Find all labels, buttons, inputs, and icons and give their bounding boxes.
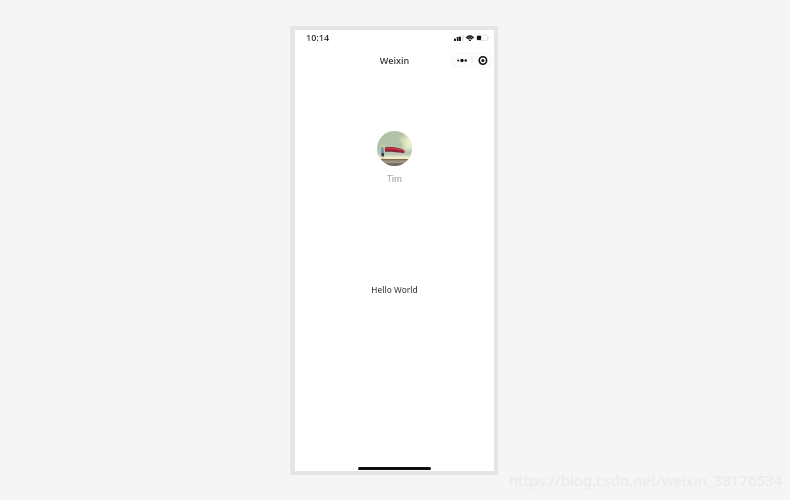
staticText: Weixin	[295, 54, 494, 66]
button[interactable]: Close mini program	[472, 53, 493, 68]
button[interactable]: Home indicator	[358, 467, 431, 470]
button[interactable]: More options	[451, 53, 472, 68]
staticText: Hello World	[295, 284, 494, 295]
button[interactable]: Tim avatar	[377, 131, 412, 166]
staticText: Tim	[387, 173, 402, 184]
button[interactable]: Tim avatar	[371, 131, 417, 184]
staticText: https://blog.csdn.net/weixin_38176534	[509, 470, 783, 490]
staticText: 10:14	[306, 31, 330, 43]
